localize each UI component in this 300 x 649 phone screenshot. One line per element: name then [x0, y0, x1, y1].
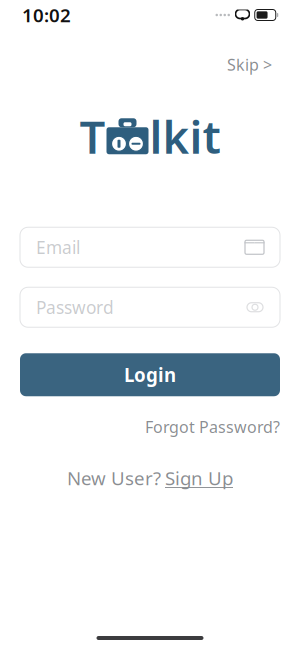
staticText: Forgot Password? [145, 416, 280, 437]
staticText: New User? [67, 465, 161, 490]
staticText: Skip [227, 54, 259, 75]
staticText: Sign Up [165, 465, 233, 490]
staticText: Login [124, 362, 176, 387]
staticText: 10:02 [22, 3, 71, 27]
button[interactable]: Forgot Password? [145, 410, 280, 443]
button[interactable]: New User? [67, 459, 233, 496]
staticText: lkit [149, 106, 220, 166]
staticText: Email [36, 236, 80, 259]
button[interactable]: Login [20, 353, 280, 396]
button[interactable]: Skip [219, 48, 280, 81]
staticText: > [263, 54, 272, 75]
staticText: Password [36, 296, 114, 319]
staticText: T [79, 106, 105, 166]
